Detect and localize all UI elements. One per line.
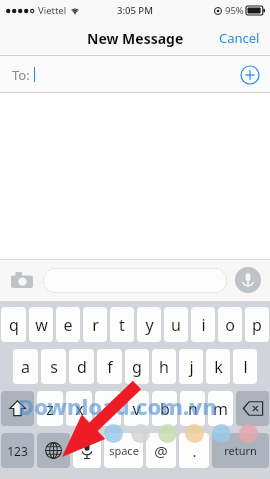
staticText: v [132, 398, 141, 420]
button[interactable]: j [179, 349, 203, 384]
button[interactable]: n [180, 391, 205, 426]
staticText: c [104, 398, 112, 420]
staticText: k [214, 356, 223, 378]
button[interactable]: q [1, 307, 26, 342]
staticText: d [77, 356, 87, 378]
staticText: b [160, 398, 170, 420]
staticText: m [213, 398, 228, 420]
staticText: r [92, 314, 99, 336]
staticText: x [75, 398, 84, 420]
staticText: space [109, 443, 139, 458]
staticText: h [159, 356, 169, 378]
button[interactable]: l [233, 349, 257, 384]
staticText: New Message [87, 29, 184, 48]
staticText: e [63, 314, 73, 336]
staticText: a [21, 356, 30, 378]
staticText: 95% [225, 4, 244, 17]
staticText: 3:05 PM [117, 4, 153, 17]
button[interactable]: Backspace [236, 391, 269, 426]
button[interactable]: v [124, 391, 149, 426]
staticText: t [119, 314, 125, 336]
button[interactable]: i [191, 307, 215, 342]
button[interactable]: return [212, 433, 269, 468]
button[interactable]: u [164, 307, 188, 342]
button[interactable]: f [97, 349, 122, 384]
button[interactable]: Dictate [235, 267, 261, 293]
staticText: Viettel [38, 4, 67, 17]
button[interactable]: d [69, 349, 94, 384]
button[interactable]: e [56, 307, 80, 342]
button[interactable]: x [66, 391, 92, 426]
staticText: n [188, 398, 198, 420]
staticText: s [50, 356, 58, 378]
button[interactable]: . [179, 433, 209, 468]
staticText: Cancel [219, 29, 260, 47]
staticText: f [107, 356, 113, 378]
staticText: z [46, 398, 54, 420]
button[interactable]: k [206, 349, 230, 384]
staticText: y [145, 314, 154, 336]
staticText: return [224, 443, 257, 458]
staticText: @ [154, 441, 168, 461]
button[interactable]: r [83, 307, 107, 342]
button[interactable]: space [104, 433, 143, 468]
button[interactable]: z [37, 391, 63, 426]
staticText: q [9, 314, 19, 336]
button[interactable]: g [125, 349, 149, 384]
button[interactable]: Add contact [240, 65, 260, 85]
staticText: . [192, 441, 197, 461]
staticText: p [252, 314, 262, 336]
button[interactable]: @ [146, 433, 176, 468]
staticText: l [243, 356, 248, 378]
button[interactable]: h [152, 349, 176, 384]
staticText: j [189, 356, 194, 378]
button[interactable]: w [29, 307, 53, 342]
button[interactable]: Dictation [73, 433, 101, 468]
staticText: i [201, 314, 206, 336]
button[interactable]: Camera [9, 267, 35, 293]
staticText: w [35, 314, 48, 336]
button[interactable]: b [152, 391, 177, 426]
staticText: To: [12, 66, 30, 84]
button[interactable]: Switch keyboard [37, 433, 70, 468]
button[interactable] [43, 268, 227, 293]
button[interactable]: s [41, 349, 66, 384]
button[interactable]: m [208, 391, 233, 426]
button[interactable]: Shift [1, 391, 34, 426]
button[interactable]: a [13, 349, 38, 384]
button[interactable]: y [137, 307, 161, 342]
button[interactable]: c [95, 391, 121, 426]
staticText: g [132, 356, 142, 378]
button[interactable]: o [218, 307, 242, 342]
button[interactable]: p [245, 307, 269, 342]
staticText: u [171, 314, 181, 336]
staticText: 123 [7, 443, 28, 459]
button[interactable]: Cancel [209, 23, 270, 53]
button[interactable]: t [110, 307, 134, 342]
staticText: Download.com.vn [18, 391, 217, 421]
button[interactable]: 123 [1, 433, 34, 468]
staticText: o [225, 314, 235, 336]
